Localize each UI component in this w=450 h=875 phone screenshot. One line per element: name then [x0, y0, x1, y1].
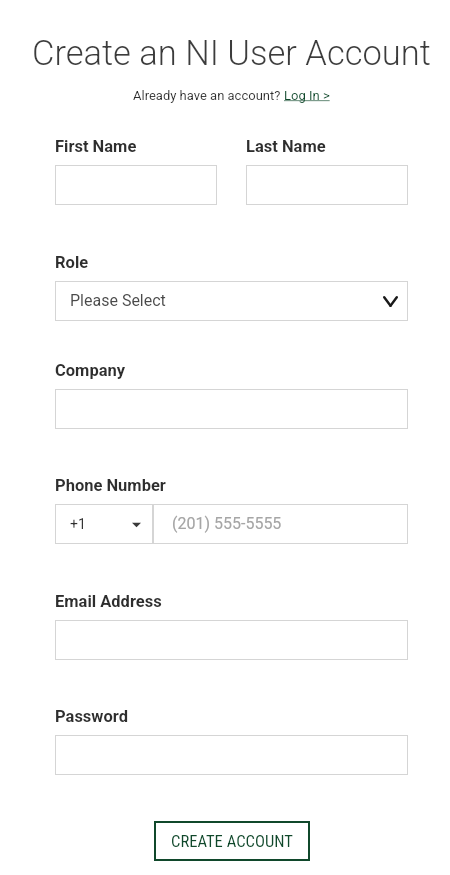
staticText: +1 — [70, 516, 86, 532]
staticText: (201) 555-5555 — [172, 514, 282, 533]
button[interactable]: (201) 555-5555 — [153, 504, 408, 544]
staticText: Phone Number — [55, 476, 166, 495]
staticText: Log In > — [284, 88, 330, 103]
button[interactable]: First Name — [55, 165, 217, 205]
other: Open role dropdown — [383, 296, 398, 307]
staticText: Email Address — [55, 592, 162, 611]
staticText: Please Select — [70, 291, 166, 310]
button[interactable]: CREATE ACCOUNT — [154, 821, 310, 861]
staticText: Last Name — [246, 137, 326, 156]
button[interactable]: Log In > — [284, 88, 330, 103]
button[interactable]: +1 — [55, 504, 153, 544]
button[interactable]: Password — [55, 735, 408, 775]
staticText: CREATE ACCOUNT — [171, 832, 293, 851]
staticText: Password — [55, 707, 128, 726]
staticText: Role — [55, 253, 89, 272]
staticText: Already have an account? — [133, 88, 284, 103]
staticText: Create an NI User Account — [32, 33, 431, 73]
staticText: Company — [55, 361, 126, 380]
button[interactable]: Company — [55, 389, 408, 429]
button[interactable]: Last Name — [246, 165, 408, 205]
button[interactable]: Please Select — [55, 281, 408, 321]
staticText: First Name — [55, 137, 137, 156]
other: Open country code dropdown — [132, 520, 141, 529]
button[interactable]: Email Address — [55, 620, 408, 660]
